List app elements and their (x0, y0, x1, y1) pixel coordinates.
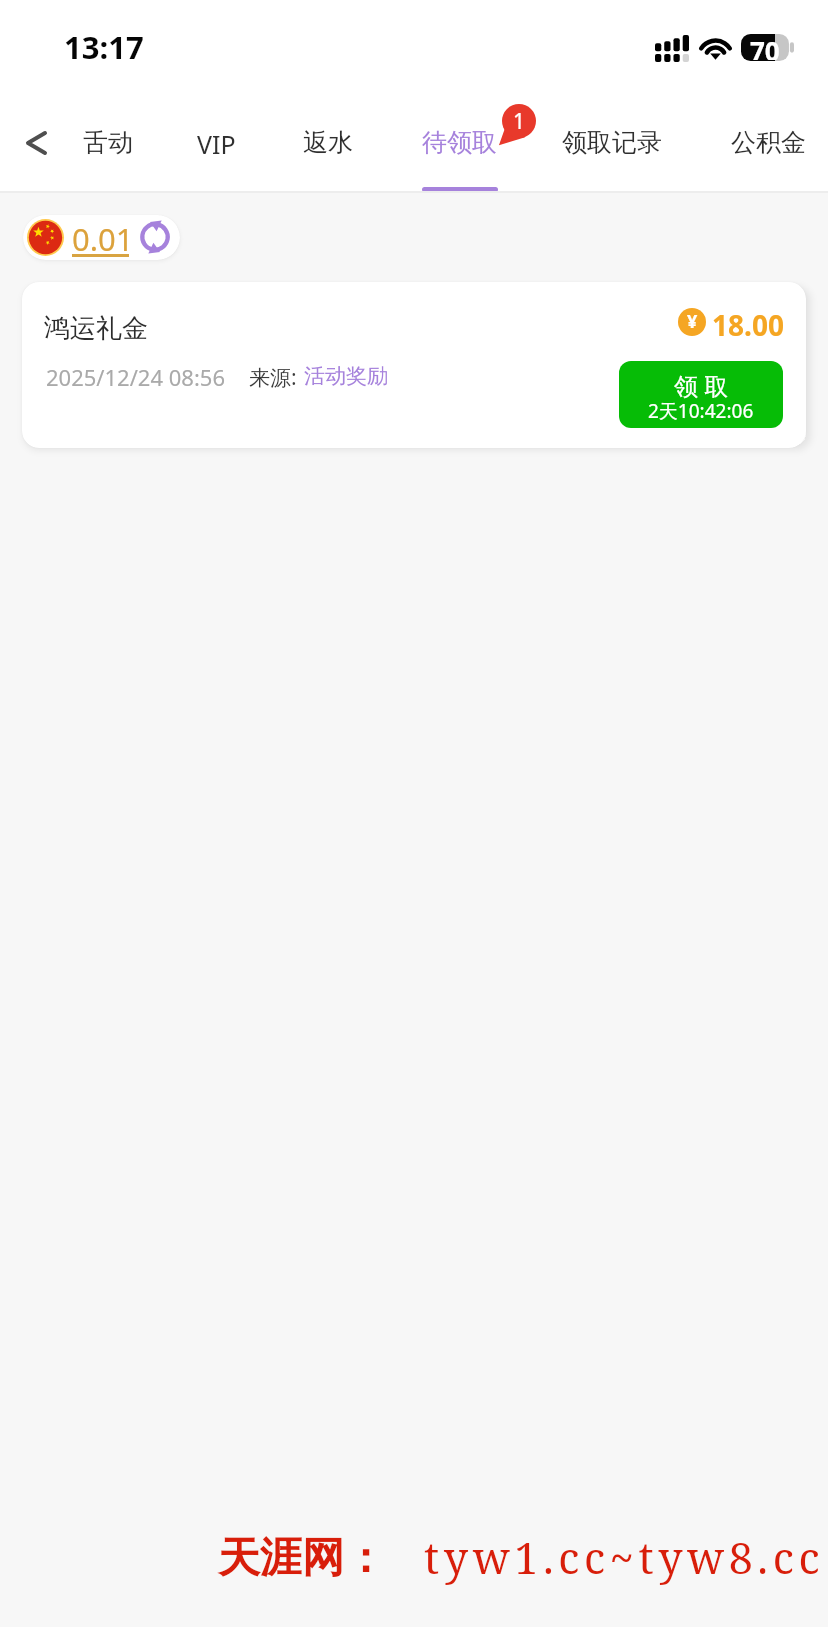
staticText: 13:17 (64, 26, 144, 68)
staticText: 活动奖励 (304, 363, 388, 389)
staticText: 1 (513, 107, 526, 136)
button[interactable]: VIP (178, 93, 254, 193)
staticText: 2天10:42:06 (648, 398, 754, 424)
button[interactable]: 鸿运礼金 (22, 282, 806, 448)
staticText: ¥ (687, 309, 698, 334)
staticText: 舌动 (83, 127, 133, 158)
button[interactable]: 舌动 (69, 93, 147, 193)
staticText: 返水 (303, 127, 353, 158)
staticText: 鸿运礼金 (44, 312, 148, 345)
button[interactable]: 公积金 (717, 93, 820, 193)
staticText: 来源: (249, 363, 297, 392)
staticText: 公积金 (731, 127, 806, 158)
button[interactable]: 领 取 (619, 361, 783, 428)
button[interactable]: 0.01 (23, 215, 180, 260)
staticText: tyw1.cc~tyw8.cc (424, 1528, 825, 1587)
staticText: 领 取 (674, 369, 729, 402)
staticText: VIP (197, 127, 236, 161)
staticText: 领取记录 (562, 127, 662, 158)
staticText: 天涯网： (218, 1532, 386, 1585)
staticText: 70 (750, 33, 780, 60)
staticText: 0.01 (72, 218, 134, 260)
button[interactable]: 领取记录 (548, 93, 676, 193)
staticText: 待领取 (422, 127, 497, 158)
button[interactable]: Back (11, 115, 61, 171)
button[interactable]: 返水 (289, 93, 367, 193)
staticText: 2025/12/24 08:56 (46, 362, 225, 392)
button[interactable]: Refresh balance (135, 217, 175, 257)
staticText: 18.00 (712, 306, 784, 344)
button[interactable]: 待领取 (408, 93, 511, 193)
